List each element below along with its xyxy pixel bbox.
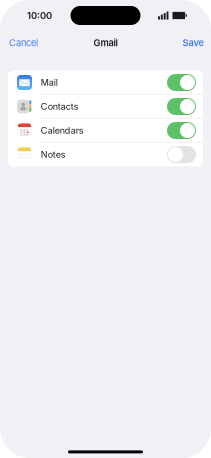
button[interactable]: Mail	[8, 70, 203, 94]
staticText: Save	[182, 37, 203, 48]
staticText: Gmail	[93, 37, 117, 48]
button[interactable]: Save	[180, 32, 204, 53]
staticText: Contacts	[41, 101, 79, 112]
staticText: 10:00	[27, 10, 52, 21]
staticText: Notes	[41, 149, 66, 160]
staticText: Mail	[41, 77, 58, 88]
button[interactable]: Cancel	[7, 32, 40, 53]
staticText: Cancel	[9, 37, 38, 48]
button[interactable]: Contacts	[8, 94, 203, 118]
button[interactable]: Calendars	[8, 118, 203, 142]
button[interactable]: Notes	[8, 142, 203, 166]
staticText: Calendars	[41, 125, 84, 136]
